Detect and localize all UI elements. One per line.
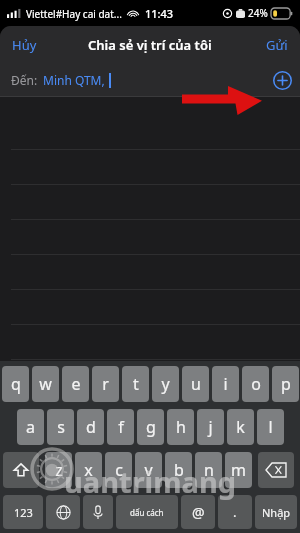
staticText: t xyxy=(133,373,139,395)
button[interactable]: Dictation xyxy=(83,495,113,529)
button[interactable]: e xyxy=(62,366,89,402)
button[interactable]: y xyxy=(152,366,179,402)
staticText: Chia sẻ vị trí của tôi xyxy=(88,36,212,54)
button[interactable]: l xyxy=(257,409,284,445)
staticText: Hủy xyxy=(12,36,37,54)
button[interactable]: w xyxy=(32,366,59,402)
staticText: Gửi xyxy=(266,36,288,54)
staticText: e xyxy=(71,373,81,395)
staticText: r xyxy=(102,373,109,395)
staticText: . xyxy=(233,503,237,521)
staticText: b xyxy=(174,459,184,481)
staticText: g xyxy=(146,416,156,438)
button[interactable]: u xyxy=(182,366,209,402)
staticText: s xyxy=(57,416,65,438)
staticText: Nhập xyxy=(262,505,291,520)
staticText: Viettel#Hay cai dat... xyxy=(26,7,122,21)
button[interactable]: q xyxy=(2,366,29,402)
button[interactable]: Shift xyxy=(3,452,39,488)
button[interactable]: s xyxy=(47,409,74,445)
staticText: o xyxy=(251,373,261,395)
button[interactable]: j xyxy=(197,409,224,445)
button[interactable]: Change language xyxy=(46,495,80,529)
button[interactable]: f xyxy=(107,409,134,445)
staticText: l xyxy=(268,416,273,438)
staticText: c xyxy=(115,459,123,481)
button[interactable]: @ xyxy=(181,495,215,529)
staticText: @ xyxy=(192,503,205,522)
staticText: k xyxy=(236,416,245,438)
staticText: 24% xyxy=(248,6,268,20)
staticText: 11:43 xyxy=(145,6,174,21)
staticText: a xyxy=(26,416,35,438)
staticText: y xyxy=(161,373,170,395)
staticText: Minh QTM, xyxy=(43,72,105,88)
button[interactable]: k xyxy=(227,409,254,445)
button[interactable]: b xyxy=(165,452,192,488)
button[interactable]: i xyxy=(212,366,239,402)
button[interactable]: v xyxy=(135,452,162,488)
staticText: n xyxy=(204,459,214,481)
staticText: j xyxy=(208,416,213,438)
staticText: f xyxy=(118,416,124,438)
staticText: d xyxy=(86,416,96,438)
staticText: uantrimang xyxy=(64,462,237,501)
button[interactable]: a xyxy=(17,409,44,445)
button[interactable]: Nhập xyxy=(255,495,297,529)
button[interactable]: h xyxy=(167,409,194,445)
button[interactable]: p xyxy=(272,366,299,402)
button[interactable]: 123 xyxy=(3,495,43,529)
button[interactable]: dấu cách xyxy=(116,495,178,529)
button[interactable]: Hủy xyxy=(0,27,49,63)
button[interactable]: d xyxy=(77,409,104,445)
staticText: q xyxy=(11,373,21,395)
button[interactable]: Add contact xyxy=(273,71,292,90)
button[interactable]: o xyxy=(242,366,269,402)
button[interactable]: n xyxy=(195,452,222,488)
staticText: 123 xyxy=(14,505,33,520)
button[interactable]: Backspace xyxy=(258,452,294,488)
staticText: w xyxy=(39,373,52,395)
staticText: h xyxy=(176,416,186,438)
button[interactable]: . xyxy=(218,495,252,529)
staticText: z xyxy=(55,459,63,481)
button[interactable]: t xyxy=(122,366,149,402)
staticText: x xyxy=(84,459,93,481)
staticText: Đến: xyxy=(11,72,38,88)
button[interactable]: z xyxy=(45,452,72,488)
button[interactable]: m xyxy=(225,452,252,488)
button[interactable]: x xyxy=(75,452,102,488)
button[interactable]: c xyxy=(105,452,132,488)
button[interactable]: Gửi xyxy=(254,27,300,63)
staticText: dấu cách xyxy=(130,507,164,518)
staticText: u xyxy=(191,373,201,395)
button[interactable]: g xyxy=(137,409,164,445)
staticText: m xyxy=(231,459,246,481)
staticText: p xyxy=(281,373,291,395)
button[interactable]: r xyxy=(92,366,119,402)
staticText: i xyxy=(223,373,228,395)
staticText: v xyxy=(144,459,153,481)
